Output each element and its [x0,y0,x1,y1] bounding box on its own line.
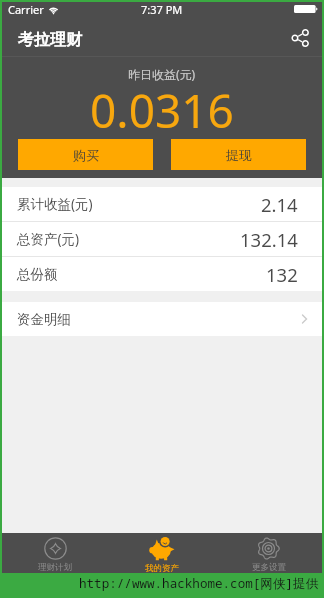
staticText: 总份额 [17,266,58,283]
button[interactable]: 购买 [18,139,153,170]
staticText: 提现 [226,147,252,163]
staticText: 总资产(元) [17,230,80,248]
button[interactable]: 资金明细 [2,302,322,336]
button[interactable]: 累计收益(元) [2,187,322,221]
staticText: 昨日收益(元) [128,66,196,82]
staticText: 132.14 [240,227,298,252]
staticText: 132 [266,262,298,287]
staticText: 考拉理财 [18,30,82,50]
button[interactable]: 我的资产 [108,533,215,573]
staticText: 7:37 PM [141,2,183,17]
button[interactable]: 总份额 [2,257,322,291]
staticText: http://www.hackhome.com[网侠]提供 [79,575,319,592]
staticText: 0.0316 [90,79,234,142]
button[interactable]: 提现 [171,139,306,170]
staticText: 累计收益(元) [17,195,93,213]
button[interactable]: Share [287,25,313,51]
staticText: 2.14 [261,192,298,217]
button[interactable]: 理财计划 [2,533,108,573]
staticText: 购买 [73,147,99,163]
staticText: 资金明细 [17,311,71,328]
button[interactable]: 更多设置 [215,533,322,573]
button[interactable]: 总资产(元) [2,222,322,256]
staticText: 更多设置 [252,562,286,573]
staticText: 理财计划 [38,562,72,573]
staticText: 我的资产 [145,563,179,573]
staticText: Carrier [8,2,44,17]
